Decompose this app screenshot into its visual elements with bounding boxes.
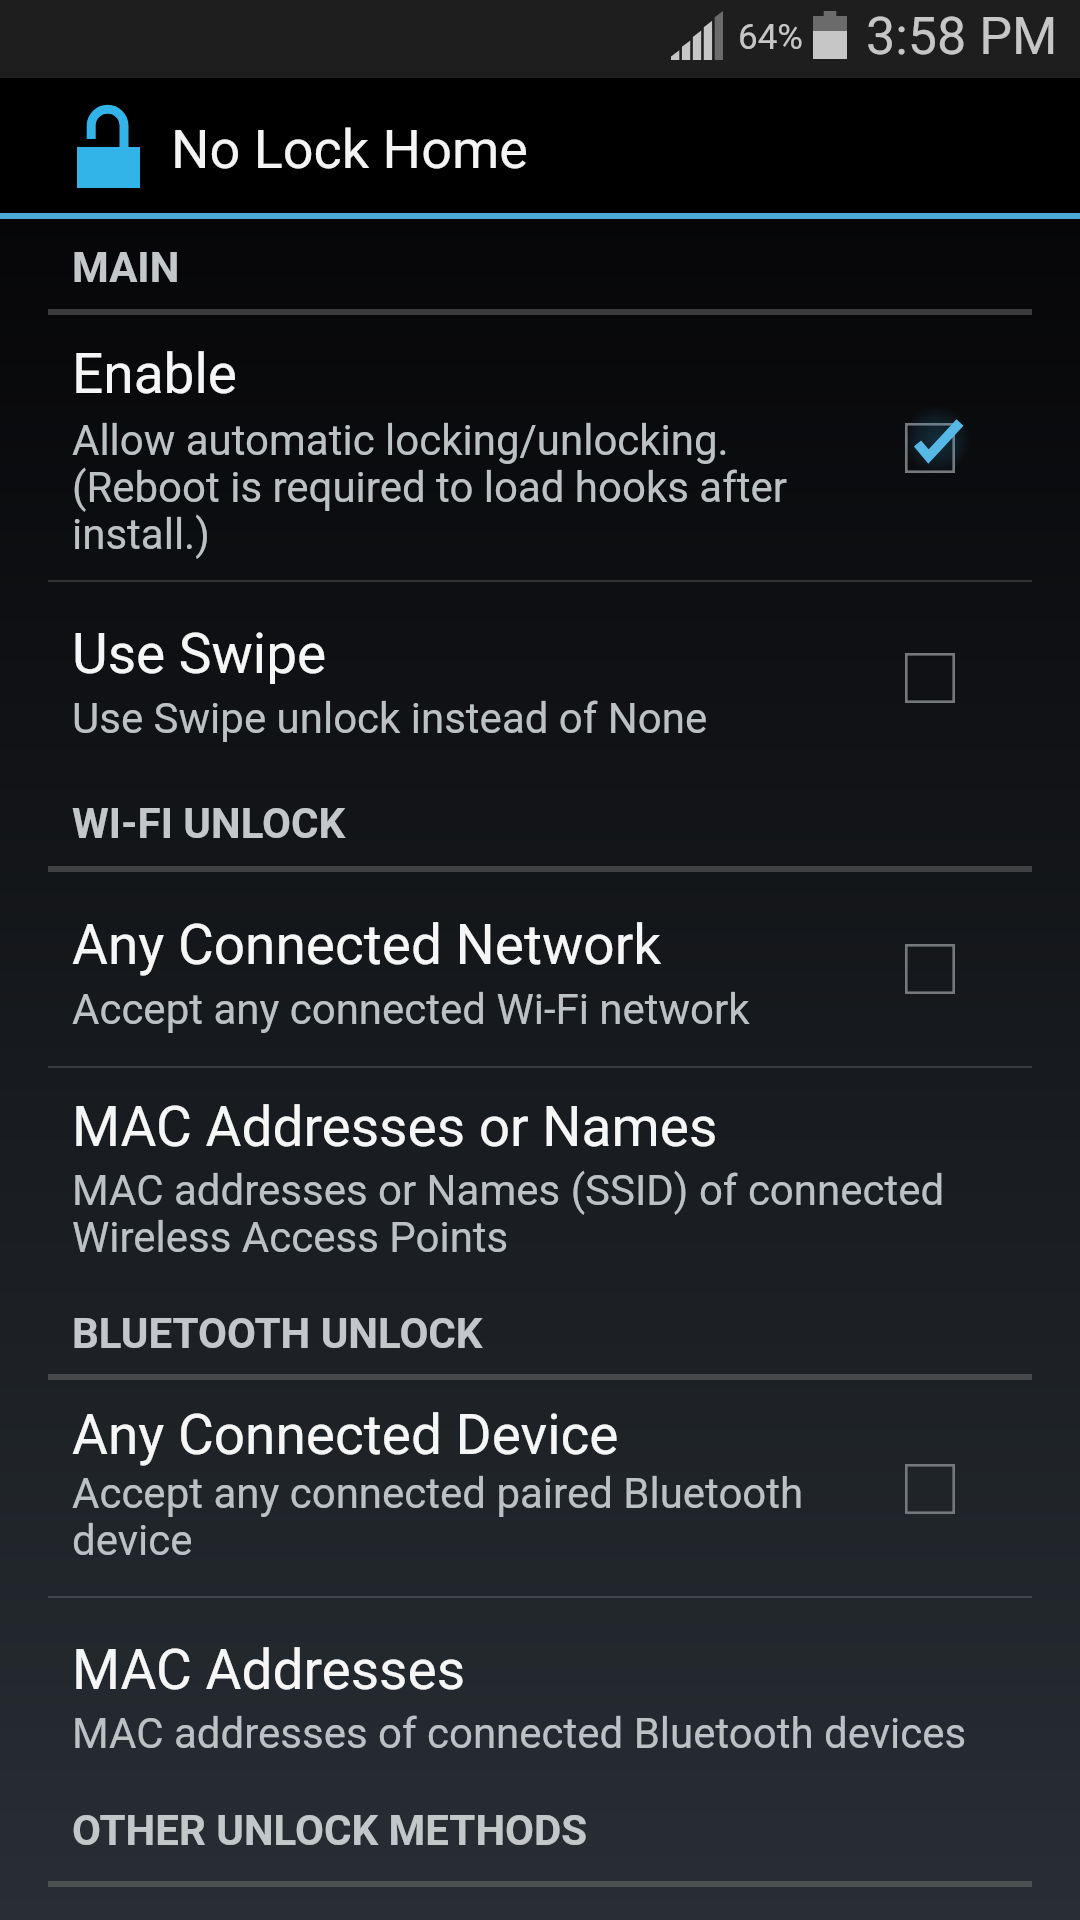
staticText: Accept any connected paired Bluetooth de… <box>72 1469 862 1565</box>
button[interactable]: Enabled, checked <box>887 405 973 491</box>
staticText: MAC addresses or Names (SSID) of connect… <box>72 1166 972 1262</box>
staticText: OTHER UNLOCK METHODS <box>72 1806 588 1855</box>
staticText: Enable <box>72 342 237 406</box>
staticText: Any Connected Network <box>72 913 662 977</box>
staticText: Any Connected Device <box>72 1403 619 1467</box>
button[interactable]: Enable <box>0 316 1080 579</box>
staticText: Use Swipe <box>72 622 327 686</box>
other: Signal strength <box>671 11 723 60</box>
button[interactable]: Any Connected Device <box>0 1381 1080 1595</box>
button[interactable]: MAC Addresses <box>0 1599 1080 1800</box>
button[interactable]: Disabled, unchecked <box>887 926 973 1012</box>
staticText: Accept any connected Wi-Fi network <box>72 985 952 1034</box>
staticText: Allow automatic locking/unlocking. (Rebo… <box>72 416 832 559</box>
staticText: MAIN <box>72 243 180 292</box>
staticText: No Lock Home <box>171 118 528 181</box>
other: Battery 64 percent <box>813 11 847 59</box>
button[interactable]: No Lock Home, open padlock <box>60 92 170 200</box>
staticText: MAC addresses of connected Bluetooth dev… <box>72 1709 1002 1758</box>
staticText: Use Swipe unlock instead of None <box>72 694 952 743</box>
staticText: BLUETOOTH UNLOCK <box>72 1309 483 1358</box>
button[interactable]: Disabled, unchecked <box>887 1446 973 1532</box>
button[interactable]: MAC Addresses or Names <box>0 1069 1080 1290</box>
staticText: MAC Addresses <box>72 1638 466 1702</box>
button[interactable]: Disabled, unchecked <box>887 635 973 721</box>
staticText: MAC Addresses or Names <box>72 1095 718 1159</box>
staticText: 64% <box>738 17 803 58</box>
button[interactable]: Use Swipe <box>0 583 1080 775</box>
staticText: WI-FI UNLOCK <box>72 799 346 848</box>
button[interactable]: Any Connected Network <box>0 873 1080 1065</box>
staticText: 3:58 PM <box>866 6 1058 67</box>
